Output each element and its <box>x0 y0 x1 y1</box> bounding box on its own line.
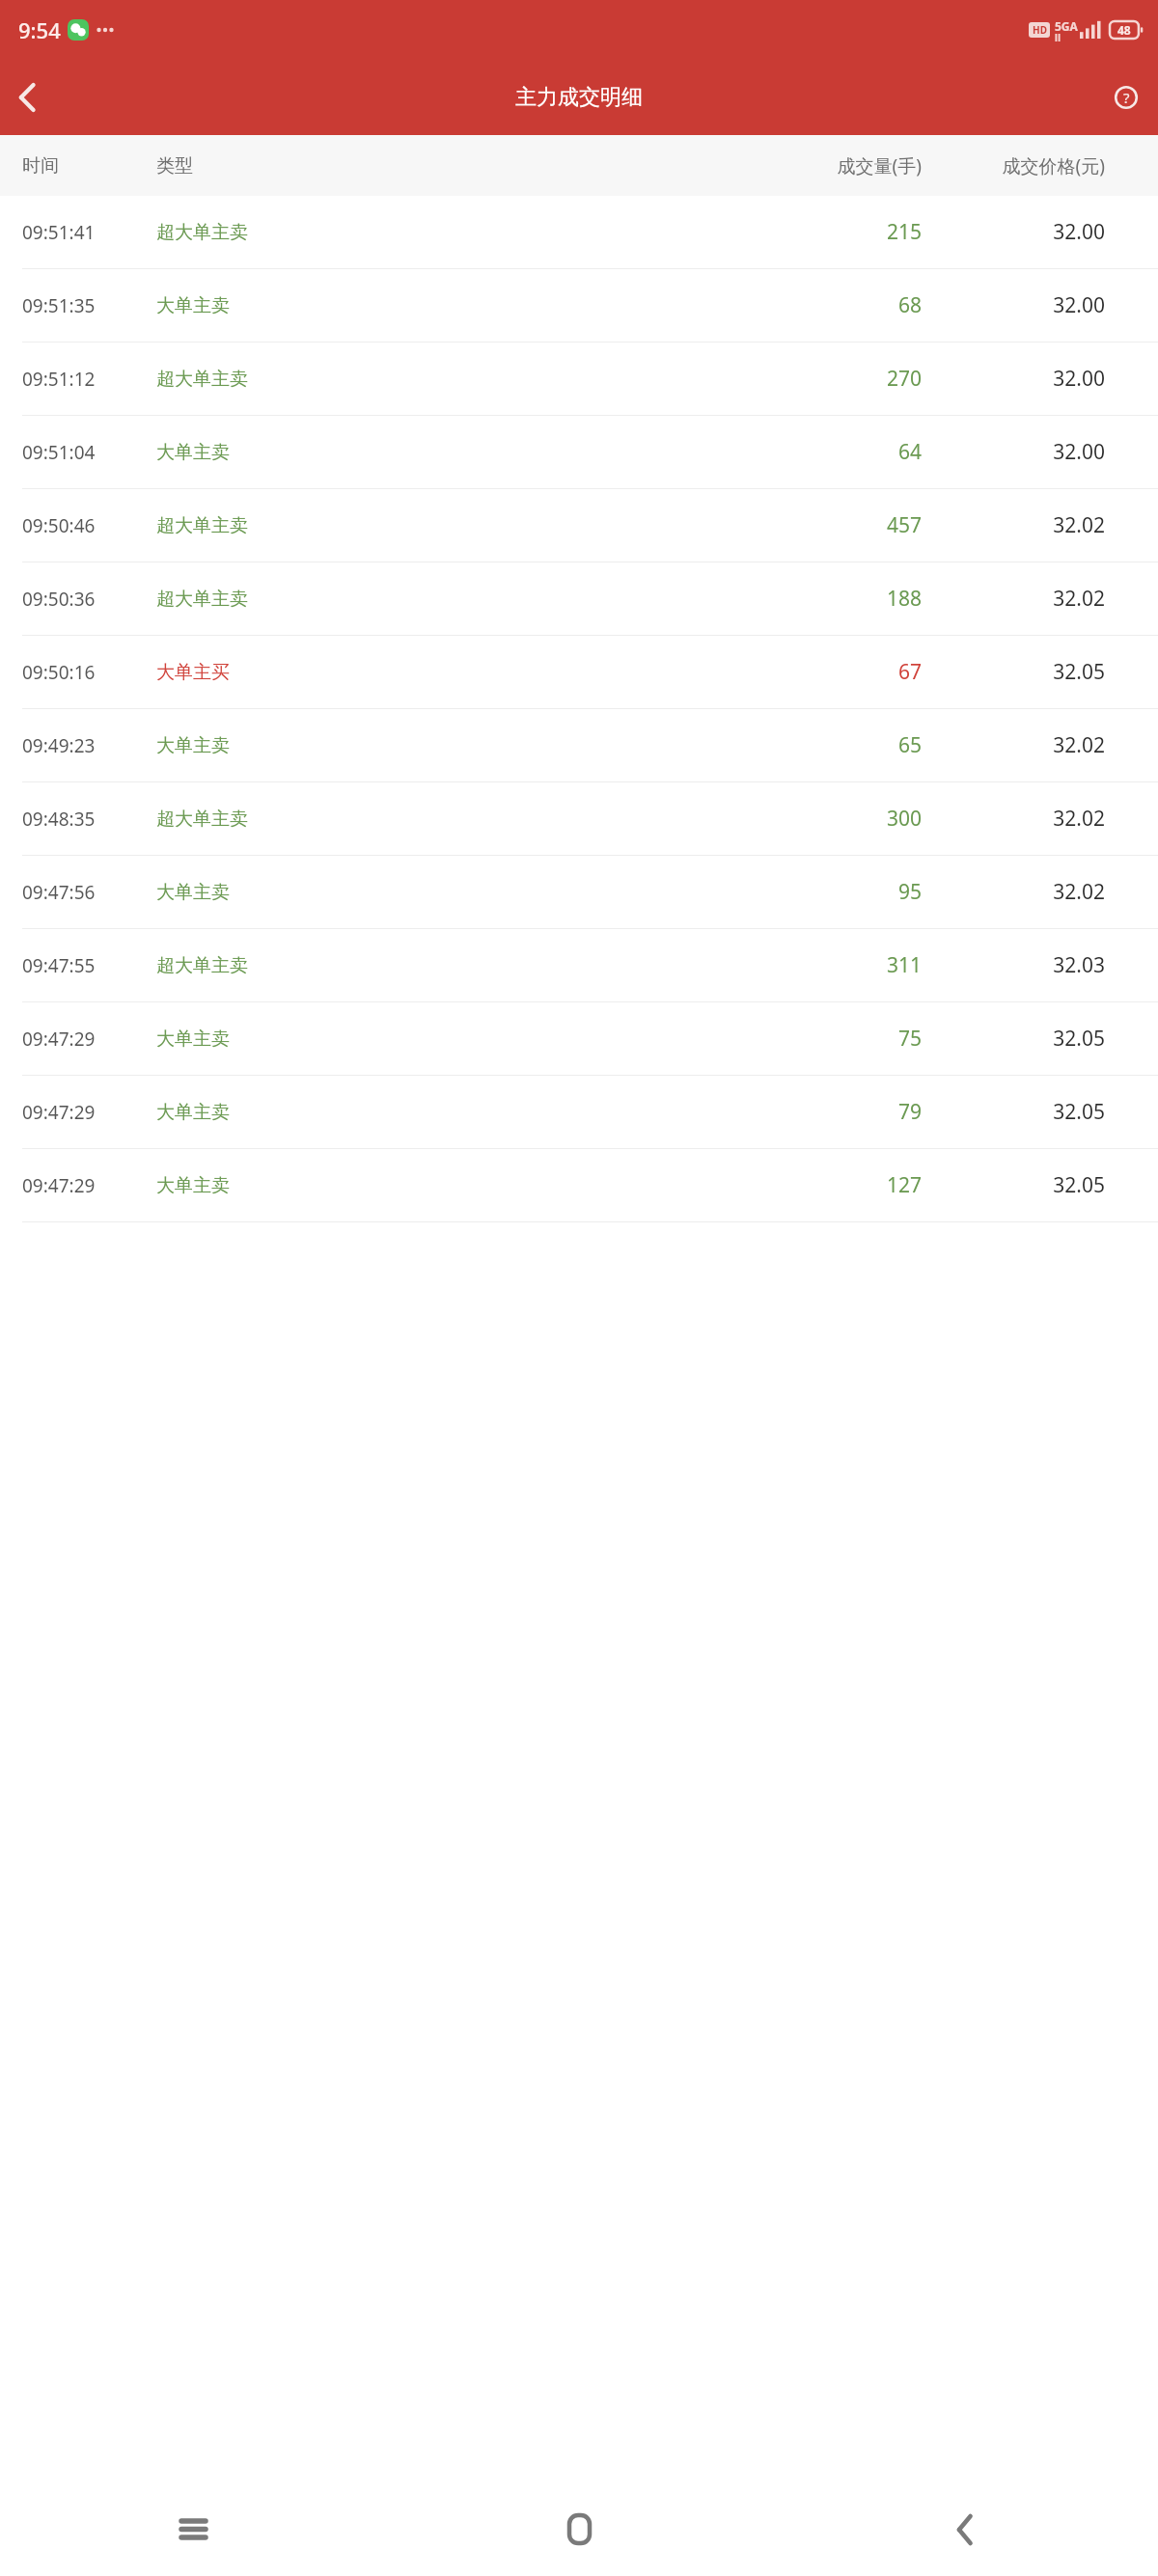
button[interactable]: Home <box>386 2482 772 2576</box>
staticText: 457 <box>809 511 922 539</box>
staticText: 32.00 <box>965 365 1105 393</box>
button[interactable]: 09:51:41 <box>0 196 1158 268</box>
button[interactable]: 09:50:16 <box>0 636 1158 708</box>
button[interactable]: 09:47:29 <box>0 1002 1158 1075</box>
staticText: 32.02 <box>965 585 1105 613</box>
staticText: 32.02 <box>965 731 1105 759</box>
staticText: 188 <box>809 585 922 613</box>
staticText: 09:47:29 <box>22 1100 156 1125</box>
button[interactable]: 09:47:29 <box>0 1076 1158 1148</box>
staticText: 成交价格(元) <box>965 153 1105 178</box>
staticText: 主力成交明细 <box>515 84 643 111</box>
staticText: 32.00 <box>965 218 1105 246</box>
staticText: 311 <box>809 951 922 979</box>
staticText: 75 <box>809 1025 922 1053</box>
staticText: 大单主卖 <box>156 1101 809 1124</box>
button[interactable]: Back <box>0 60 56 135</box>
button[interactable]: 09:47:29 <box>0 1149 1158 1221</box>
staticText: 32.05 <box>965 1025 1105 1053</box>
staticText: 09:51:41 <box>22 220 156 245</box>
staticText: 超大单主卖 <box>156 808 809 831</box>
staticText: HD <box>1033 23 1047 37</box>
button[interactable]: 09:50:36 <box>0 562 1158 635</box>
staticText: 215 <box>809 218 922 246</box>
staticText: 大单主卖 <box>156 1028 809 1051</box>
staticText: 成交量(手) <box>809 153 922 178</box>
staticText: ? <box>1123 88 1130 107</box>
staticText: 32.05 <box>965 1171 1105 1199</box>
staticText: 48 <box>1117 22 1131 38</box>
staticText: 67 <box>809 658 922 686</box>
staticText: 09:51:12 <box>22 367 156 392</box>
staticText: 64 <box>809 438 922 466</box>
button[interactable]: Help <box>1094 60 1158 135</box>
staticText: 09:51:04 <box>22 440 156 465</box>
staticText: 大单主卖 <box>156 441 809 464</box>
staticText: 超大单主卖 <box>156 954 809 977</box>
staticText: 5GA <box>1055 18 1078 34</box>
staticText: 127 <box>809 1171 922 1199</box>
staticText: 超大单主卖 <box>156 588 809 611</box>
staticText: 32.05 <box>965 658 1105 686</box>
staticText: 32.05 <box>965 1098 1105 1126</box>
button[interactable]: 09:50:46 <box>0 489 1158 562</box>
staticText: 超大单主卖 <box>156 514 809 537</box>
button[interactable]: 09:48:35 <box>0 782 1158 855</box>
staticText: 270 <box>809 365 922 393</box>
staticText: 大单主卖 <box>156 1174 809 1197</box>
staticText: 68 <box>809 291 922 319</box>
button[interactable]: Recent apps <box>0 2482 386 2576</box>
staticText: 09:47:56 <box>22 880 156 905</box>
staticText: 大单主卖 <box>156 881 809 904</box>
staticText: 09:50:46 <box>22 513 156 538</box>
staticText: 超大单主卖 <box>156 221 809 244</box>
button[interactable]: 09:51:12 <box>0 343 1158 415</box>
staticText: 09:47:55 <box>22 953 156 978</box>
staticText: 300 <box>809 805 922 833</box>
button[interactable]: 09:47:55 <box>0 929 1158 1001</box>
staticText: 9:54 <box>18 15 61 44</box>
button[interactable]: 09:51:04 <box>0 416 1158 488</box>
staticText: 类型 <box>156 154 809 178</box>
staticText: 超大单主卖 <box>156 368 809 391</box>
staticText: 32.02 <box>965 878 1105 906</box>
staticText: 32.00 <box>965 438 1105 466</box>
staticText: 32.02 <box>965 511 1105 539</box>
button[interactable]: Back <box>772 2482 1158 2576</box>
button[interactable]: 09:49:23 <box>0 709 1158 781</box>
staticText: 09:47:29 <box>22 1027 156 1052</box>
staticText: 79 <box>809 1098 922 1126</box>
staticText: 时间 <box>22 154 156 178</box>
staticText: 大单主卖 <box>156 734 809 757</box>
staticText: 09:50:16 <box>22 660 156 685</box>
staticText: 大单主买 <box>156 661 809 684</box>
staticText: 32.00 <box>965 291 1105 319</box>
staticText: 09:48:35 <box>22 807 156 832</box>
staticText: 95 <box>809 878 922 906</box>
button[interactable]: 09:51:35 <box>0 269 1158 342</box>
staticText: 09:49:23 <box>22 733 156 758</box>
staticText: 65 <box>809 731 922 759</box>
staticText: 09:50:36 <box>22 587 156 612</box>
staticText: 大单主卖 <box>156 294 809 317</box>
staticText: 32.03 <box>965 951 1105 979</box>
staticText: 32.02 <box>965 805 1105 833</box>
button[interactable]: 09:47:56 <box>0 856 1158 928</box>
staticText: 09:47:29 <box>22 1173 156 1198</box>
staticText: 09:51:35 <box>22 293 156 318</box>
